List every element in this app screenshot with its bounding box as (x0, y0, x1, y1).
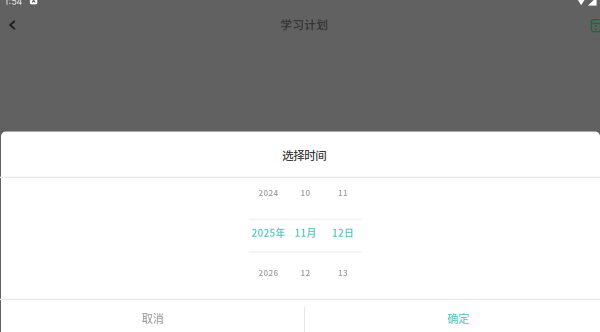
button[interactable]: 取消 (0, 302, 305, 332)
staticText: 取消 (142, 310, 164, 326)
staticText: 确定 (447, 310, 469, 326)
staticText: 选择时间 (282, 147, 326, 163)
staticText: 12日 (332, 225, 354, 240)
staticText: 10 (300, 187, 310, 198)
staticText: 2026 (258, 267, 278, 278)
staticText: 13 (338, 267, 348, 278)
button[interactable]: Back (0, 10, 27, 40)
staticText: 1:54 (4, 0, 22, 7)
button[interactable]: Calendar (584, 10, 600, 40)
staticText: 11 (338, 187, 348, 198)
staticText: 11月 (294, 225, 316, 240)
button[interactable]: 确定 (310, 302, 600, 332)
staticText: 12 (300, 267, 310, 278)
staticText: 2025年 (251, 225, 285, 240)
staticText: 2024 (258, 187, 278, 198)
staticText: 学习计划 (280, 16, 328, 33)
